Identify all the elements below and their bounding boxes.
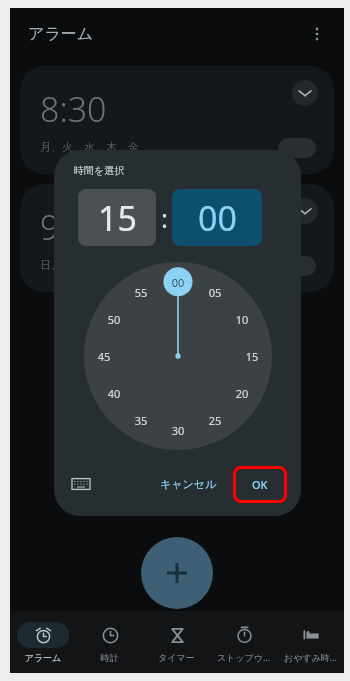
staticText: 日、土 bbox=[40, 258, 73, 272]
staticText: アラーム bbox=[28, 24, 94, 44]
button[interactable]: 30 bbox=[163, 415, 193, 445]
button[interactable]: Expand bbox=[292, 80, 318, 106]
staticText: 9:00 bbox=[40, 204, 107, 250]
button[interactable]: 05 bbox=[200, 277, 230, 307]
staticText: 25 bbox=[200, 413, 230, 428]
button[interactable]: タイマー bbox=[143, 622, 210, 663]
staticText: 05 bbox=[200, 285, 230, 300]
button[interactable]: 10 bbox=[227, 304, 257, 334]
staticText: : bbox=[161, 200, 168, 235]
button[interactable]: 15 bbox=[237, 341, 267, 371]
staticText: キャンセル bbox=[160, 477, 217, 491]
button[interactable]: アラーム bbox=[10, 622, 76, 663]
staticText: 10 bbox=[227, 312, 257, 327]
staticText: 50 bbox=[99, 312, 129, 327]
button[interactable]: 00 bbox=[163, 267, 193, 297]
staticText: 30 bbox=[163, 423, 193, 438]
button[interactable]: 50 bbox=[99, 304, 129, 334]
staticText: 45 bbox=[89, 349, 119, 364]
staticText: 15 bbox=[98, 195, 137, 241]
staticText: 15 bbox=[237, 349, 267, 364]
staticText: 時計 bbox=[76, 652, 143, 663]
staticText: 月、火、水、木、金 bbox=[40, 140, 139, 154]
button[interactable]: 25 bbox=[200, 405, 230, 435]
button[interactable]: 時計 bbox=[76, 622, 143, 663]
button[interactable]: Expand bbox=[20, 184, 334, 292]
button[interactable]: 35 bbox=[126, 405, 156, 435]
button[interactable]: 55 bbox=[126, 277, 156, 307]
staticText: 35 bbox=[126, 413, 156, 428]
button[interactable]: 45 bbox=[89, 341, 119, 371]
staticText: ストップウ… bbox=[210, 651, 277, 663]
button[interactable]: Toggle alarm bbox=[278, 138, 316, 158]
button[interactable]: Expand bbox=[20, 66, 334, 174]
staticText: おやすみ時… bbox=[277, 651, 344, 663]
button[interactable]: キャンセル bbox=[150, 469, 227, 499]
staticText: 時間を選択 bbox=[74, 164, 125, 177]
staticText: 20 bbox=[227, 386, 257, 401]
button[interactable]: 40 bbox=[99, 378, 129, 408]
staticText: 40 bbox=[99, 386, 129, 401]
staticText: 8:30 bbox=[40, 86, 107, 132]
staticText: 00 bbox=[198, 195, 237, 241]
button[interactable]: おやすみ時… bbox=[277, 621, 344, 663]
button[interactable]: OK bbox=[236, 469, 284, 500]
button[interactable]: More options bbox=[304, 21, 330, 47]
button[interactable]: 15 bbox=[78, 189, 156, 246]
button[interactable]: 20 bbox=[227, 378, 257, 408]
staticText: 55 bbox=[126, 285, 156, 300]
staticText: タイマー bbox=[143, 652, 210, 663]
button[interactable]: Switch to text input bbox=[70, 473, 92, 495]
button[interactable]: ストップウ… bbox=[210, 621, 277, 663]
button[interactable]: 00 bbox=[172, 189, 262, 246]
button[interactable]: Toggle alarm bbox=[278, 256, 316, 276]
button[interactable]: Expand bbox=[292, 198, 318, 224]
staticText: OK bbox=[252, 477, 268, 492]
button[interactable]: Add alarm bbox=[141, 537, 213, 609]
staticText: 00 bbox=[163, 275, 193, 290]
staticText: アラーム bbox=[10, 652, 76, 663]
